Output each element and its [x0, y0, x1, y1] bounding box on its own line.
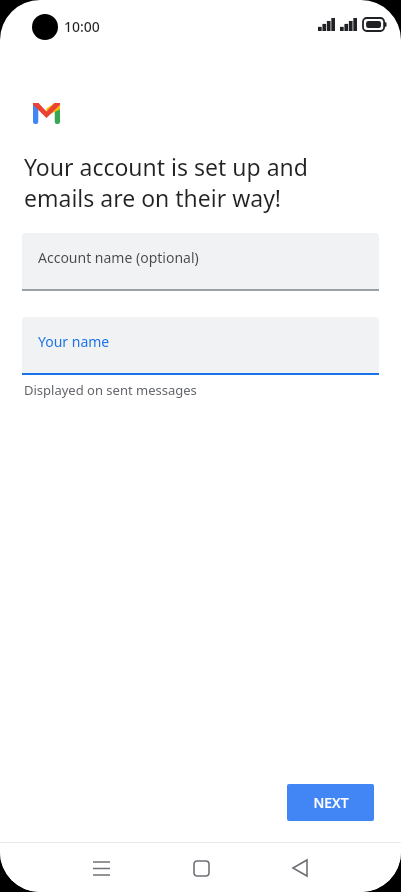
staticText: NEXT [313, 793, 349, 812]
button[interactable]: Home [179, 846, 223, 890]
staticText: Account name (optional) [38, 248, 199, 267]
button[interactable]: Account name (optional) [22, 233, 379, 291]
staticText: Displayed on sent messages [24, 381, 197, 399]
button[interactable]: Your name [22, 317, 379, 375]
staticText: Your name [38, 332, 110, 351]
button[interactable]: NEXT [287, 784, 374, 821]
button[interactable]: Recent apps [79, 846, 123, 890]
staticText: Your account is set up and emails are on… [24, 151, 371, 214]
button[interactable]: Back [278, 846, 322, 890]
staticText: 10:00 [64, 17, 100, 36]
